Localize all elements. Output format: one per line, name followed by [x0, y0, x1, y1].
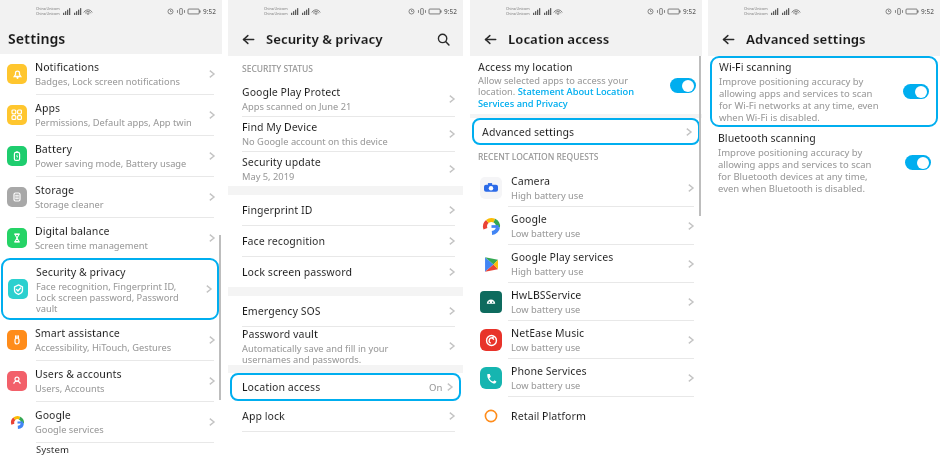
button[interactable]: Google [470, 207, 702, 244]
button[interactable]: Google Play services [470, 245, 702, 282]
button[interactable]: Back [236, 27, 260, 51]
button[interactable]: Notifications [0, 54, 222, 94]
staticText: On [429, 381, 443, 394]
button[interactable]: Phone Services [470, 359, 702, 396]
staticText: 9:52 [683, 7, 696, 16]
staticText: Allow selected apps to access your locat… [478, 74, 635, 110]
staticText: Location access [242, 380, 321, 394]
staticText: Security & privacy [266, 30, 383, 48]
staticText: 9:52 [921, 7, 934, 16]
button[interactable]: Lock screen password [228, 257, 463, 287]
button[interactable]: App lock [228, 401, 463, 431]
staticText: Users, Accounts [35, 382, 105, 395]
staticText: Storage [35, 183, 74, 197]
button[interactable]: Security & privacy [1, 258, 219, 320]
button[interactable]: Fingerprint ID [228, 195, 463, 225]
staticText: Google [35, 408, 71, 422]
staticText: Low battery use [511, 379, 581, 392]
staticText: Notifications [35, 60, 100, 74]
staticText: Advanced settings [746, 30, 866, 48]
staticText: China Unicom [36, 6, 60, 11]
staticText: Accessibility, HiTouch, Gestures [35, 341, 172, 354]
button[interactable]: Battery [0, 136, 222, 176]
staticText: Smart assistance [35, 326, 120, 340]
staticText: Camera [511, 174, 550, 188]
button[interactable]: Storage [0, 177, 222, 217]
button[interactable]: Bluetooth scanning [708, 127, 940, 198]
button[interactable]: Find My Device [228, 117, 463, 151]
staticText: 9:52 [203, 7, 216, 16]
button[interactable]: Smart assistance [0, 320, 222, 360]
button[interactable]: Google [0, 402, 222, 442]
staticText: Users & accounts [35, 367, 122, 381]
staticText: Security update [242, 155, 321, 169]
staticText: Low battery use [511, 227, 581, 240]
staticText: Advanced settings [482, 125, 684, 139]
staticText: Emergency SOS [242, 304, 447, 318]
staticText: Wi-Fi scanning [719, 60, 792, 74]
staticText: System [36, 443, 69, 456]
staticText: Face recognition [242, 234, 447, 248]
staticText: China Unicom [744, 6, 768, 11]
staticText: Improve positioning accuracy by allowing… [719, 75, 879, 124]
staticText: Fingerprint ID [242, 203, 447, 217]
staticText: China Unicom [264, 11, 288, 16]
button[interactable]: Emergency SOS [228, 296, 463, 326]
staticText: NetEase Music [511, 326, 585, 340]
staticText: Face recognition, Fingerprint ID, Lock s… [36, 280, 179, 314]
button[interactable]: Digital balance [0, 218, 222, 258]
staticText: Location access [508, 30, 610, 48]
staticText: Access my location [478, 60, 573, 74]
staticText: China Unicom [744, 11, 768, 16]
button[interactable]: HwLBSService [470, 283, 702, 320]
button[interactable]: Location access [230, 373, 461, 401]
button[interactable]: Apps [0, 95, 222, 135]
staticText: Screen time management [35, 239, 148, 252]
staticText: 9:52 [444, 7, 457, 16]
staticText: Phone Services [511, 364, 587, 378]
button[interactable]: Back [716, 27, 740, 51]
button[interactable]: Advanced settings [472, 118, 700, 145]
button[interactable]: Toggle [670, 78, 696, 93]
staticText: Apps scanned on June 21 [242, 100, 352, 113]
staticText: Digital balance [35, 224, 110, 238]
staticText: Google services [35, 423, 104, 436]
staticText: App lock [242, 409, 447, 423]
button[interactable]: Access my location [470, 56, 702, 114]
staticText: Settings [8, 29, 66, 48]
staticText: Google [511, 212, 547, 226]
button[interactable]: Security update [228, 152, 463, 186]
staticText: Low battery use [511, 303, 581, 316]
staticText: RECENT LOCATION REQUESTS [478, 151, 599, 163]
staticText: May 5, 2019 [242, 170, 295, 183]
staticText: Permissions, Default apps, App twin [35, 116, 192, 129]
button[interactable]: Retail Platform [470, 397, 702, 434]
staticText: China Unicom [264, 6, 288, 11]
button[interactable]: Back [478, 27, 502, 51]
staticText: Improve positioning accuracy by allowing… [718, 146, 872, 195]
staticText: Google Play services [511, 250, 614, 264]
button[interactable]: Camera [470, 169, 702, 206]
button[interactable]: Face recognition [228, 226, 463, 256]
staticText: China Unicom [506, 6, 530, 11]
staticText: High battery use [511, 265, 584, 278]
staticText: Find My Device [242, 120, 318, 134]
staticText: Security & privacy [36, 265, 126, 279]
staticText: Google Play Protect [242, 85, 341, 99]
staticText: HwLBSService [511, 288, 582, 302]
button[interactable]: Google Play Protect [228, 82, 463, 116]
staticText: High battery use [511, 189, 584, 202]
staticText: China Unicom [36, 11, 60, 16]
button[interactable]: Password vault [228, 327, 463, 365]
staticText: No Google account on this device [242, 135, 388, 148]
button[interactable]: Users & accounts [0, 361, 222, 401]
button[interactable]: Toggle [903, 84, 929, 99]
staticText: Retail Platform [511, 409, 586, 423]
staticText: SECURITY STATUS [242, 63, 313, 75]
button[interactable]: Toggle [905, 155, 931, 170]
button[interactable]: Search [431, 27, 455, 51]
staticText: China Unicom [506, 11, 530, 16]
staticText: Power saving mode, Battery usage [35, 157, 187, 170]
button[interactable]: NetEase Music [470, 321, 702, 358]
button[interactable]: Wi-Fi scanning [710, 56, 938, 127]
